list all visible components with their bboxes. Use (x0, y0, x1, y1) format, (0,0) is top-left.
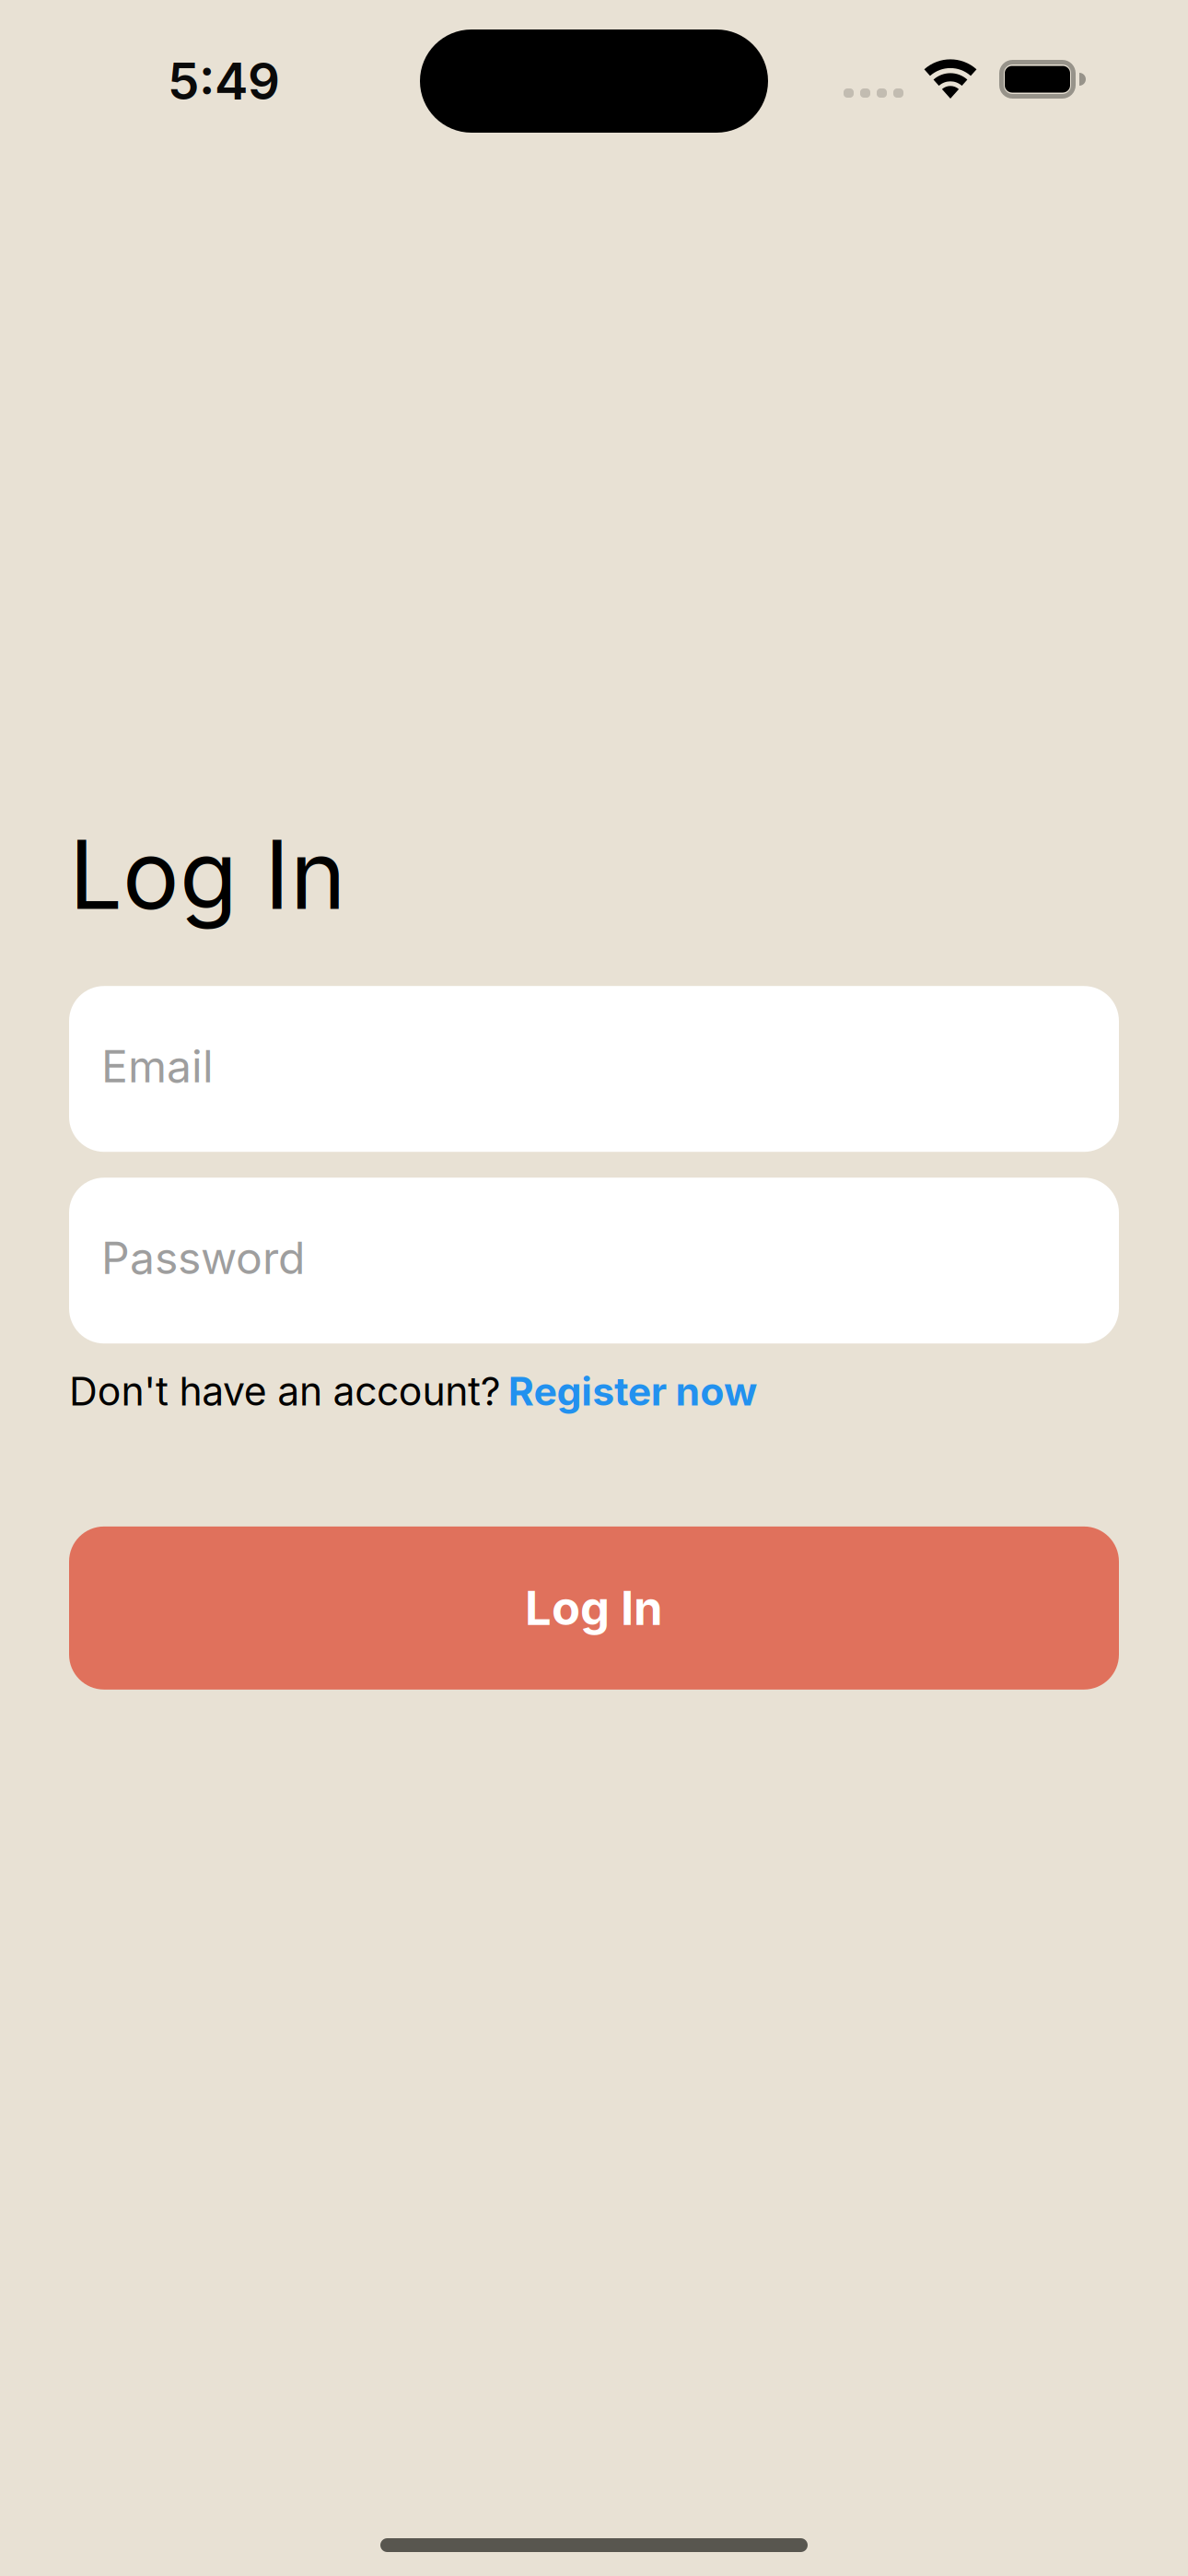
button[interactable]: Register now (508, 1367, 757, 1415)
button[interactable]: Password (69, 1178, 1119, 1343)
button[interactable]: Email (69, 986, 1119, 1152)
staticText: Don't have an account? (69, 1367, 501, 1415)
staticText: Register now (508, 1367, 757, 1415)
staticText: Password (101, 1231, 305, 1285)
button[interactable]: Log In (69, 1526, 1119, 1690)
staticText: Log In (525, 1580, 663, 1636)
staticText: Log In (69, 817, 346, 932)
staticText: Email (101, 1039, 214, 1093)
staticText: 5:49 (168, 51, 280, 112)
